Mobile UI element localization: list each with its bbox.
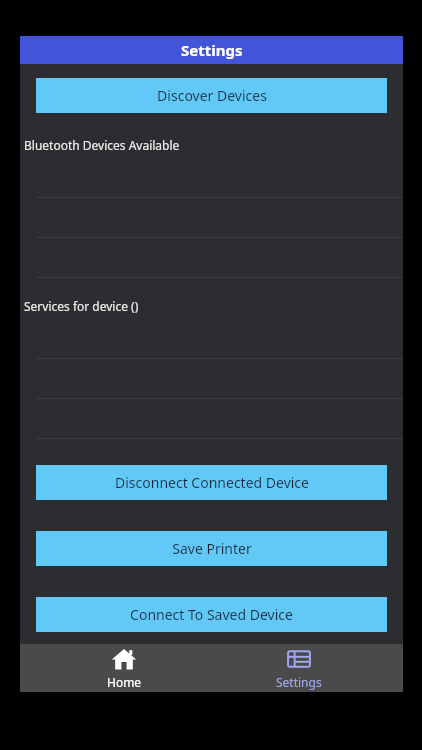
staticText: Discover Devices — [157, 86, 267, 105]
button[interactable]: Home — [54, 644, 194, 692]
staticText: Disconnect Connected Device — [115, 473, 309, 492]
staticText: Settings — [276, 674, 322, 690]
staticText: Services for device () — [24, 298, 139, 314]
button[interactable]: Connect To Saved Device — [36, 597, 387, 632]
button[interactable]: Settings — [229, 644, 369, 692]
button[interactable]: Discover Devices — [36, 78, 387, 113]
staticText: Settings — [181, 40, 243, 60]
staticText: Home — [107, 674, 142, 690]
button[interactable]: Save Printer — [36, 531, 387, 566]
staticText: Connect To Saved Device — [130, 605, 293, 624]
button[interactable]: Disconnect Connected Device — [36, 465, 387, 500]
staticText: Save Printer — [172, 539, 252, 558]
staticText: Bluetooth Devices Available — [24, 137, 180, 153]
